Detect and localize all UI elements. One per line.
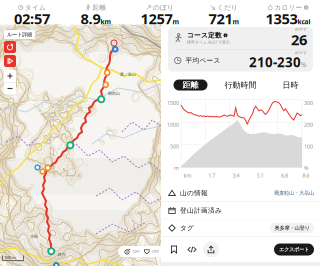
staticText: 距離 <box>92 3 106 12</box>
button[interactable]: ルート詳細 <box>4 30 35 39</box>
staticText: OFF <box>152 249 159 254</box>
staticText: 1500 <box>167 99 179 107</box>
staticText: % <box>301 60 307 69</box>
staticText: 3.4 <box>232 172 239 179</box>
staticText: i <box>306 4 307 11</box>
button[interactable]: Embed code <box>185 242 199 256</box>
staticText: 御前山 <box>108 91 120 96</box>
button[interactable]: Play route <box>4 55 16 67</box>
staticText: km <box>100 17 111 26</box>
staticText: めやす <box>295 27 307 32</box>
staticText: OFF <box>132 249 139 254</box>
staticText: km <box>184 172 192 179</box>
button[interactable]: 行動時間 <box>218 79 262 90</box>
staticText: 日時 <box>282 80 298 90</box>
staticText: のぼり <box>153 3 174 12</box>
staticText: タイム <box>25 3 46 12</box>
staticText: 平均ペース <box>185 56 220 65</box>
button[interactable]: 距離 <box>173 79 207 90</box>
staticText: 登山計画済み <box>180 206 222 215</box>
button[interactable]: Share <box>203 241 219 257</box>
staticText: 02:57 <box>14 9 50 28</box>
button[interactable]: Zoom out <box>4 82 16 94</box>
staticText: 蕎麦粒山・大岳山 <box>274 190 314 196</box>
staticText: 1000 <box>167 121 179 128</box>
button[interactable]: Bookmark <box>167 242 181 256</box>
staticText: 6.8 <box>281 172 288 179</box>
button[interactable]: 山の情報 <box>161 184 320 201</box>
button[interactable]: タグ <box>161 219 320 236</box>
button[interactable]: エクスポート <box>274 243 314 255</box>
staticText: 8.6 <box>302 172 309 179</box>
button[interactable]: 登山計画済み <box>161 202 320 219</box>
staticText: ルート詳細 <box>7 31 32 38</box>
staticText: めやす <box>295 50 307 55</box>
staticText: 300 <box>304 99 313 107</box>
button[interactable]: Map layers off <box>143 248 159 255</box>
staticText: 26 <box>291 30 307 49</box>
staticText: 8.9 <box>80 9 100 28</box>
staticText: 500 m <box>5 255 16 260</box>
staticText: コース定数 <box>187 31 222 39</box>
staticText: m <box>174 164 179 171</box>
button[interactable]: 日時 <box>273 79 307 90</box>
staticText: 500 <box>170 143 179 150</box>
staticText: 210-230 <box>249 53 301 71</box>
button[interactable]: Zoom in <box>4 70 16 82</box>
staticText: 721 <box>208 9 232 28</box>
staticText: 1353 <box>265 9 297 28</box>
staticText: エクスポート <box>279 246 309 253</box>
staticText: % <box>304 164 308 171</box>
staticText: 終点 <box>58 252 66 257</box>
staticText: 1.7 <box>208 172 215 179</box>
staticText: 行動時間 <box>224 80 256 90</box>
staticText: 標準タイム 06:07 で算出 <box>187 39 230 45</box>
staticText: 水根 <box>30 234 38 239</box>
staticText: m <box>232 17 239 26</box>
button[interactable]: Photo pins off <box>124 248 139 255</box>
button[interactable]: Replay route <box>4 41 16 53</box>
staticText: 200 <box>304 121 313 128</box>
staticText: 1257 <box>140 9 172 28</box>
staticText: 距離 <box>182 80 198 90</box>
staticText: i <box>225 32 226 39</box>
staticText: タグ <box>180 224 194 232</box>
staticText: kcal <box>297 17 310 26</box>
staticText: くだり <box>217 3 238 12</box>
staticText: m <box>172 17 179 26</box>
staticText: 100 <box>304 143 313 150</box>
staticText: 5.1 <box>257 172 264 179</box>
staticText: 鷹ノ巣山 <box>120 72 136 77</box>
staticText: カロリー <box>274 3 302 12</box>
staticText: 山の情報 <box>180 189 208 197</box>
staticText: 奥多摩・山登り <box>274 225 309 231</box>
